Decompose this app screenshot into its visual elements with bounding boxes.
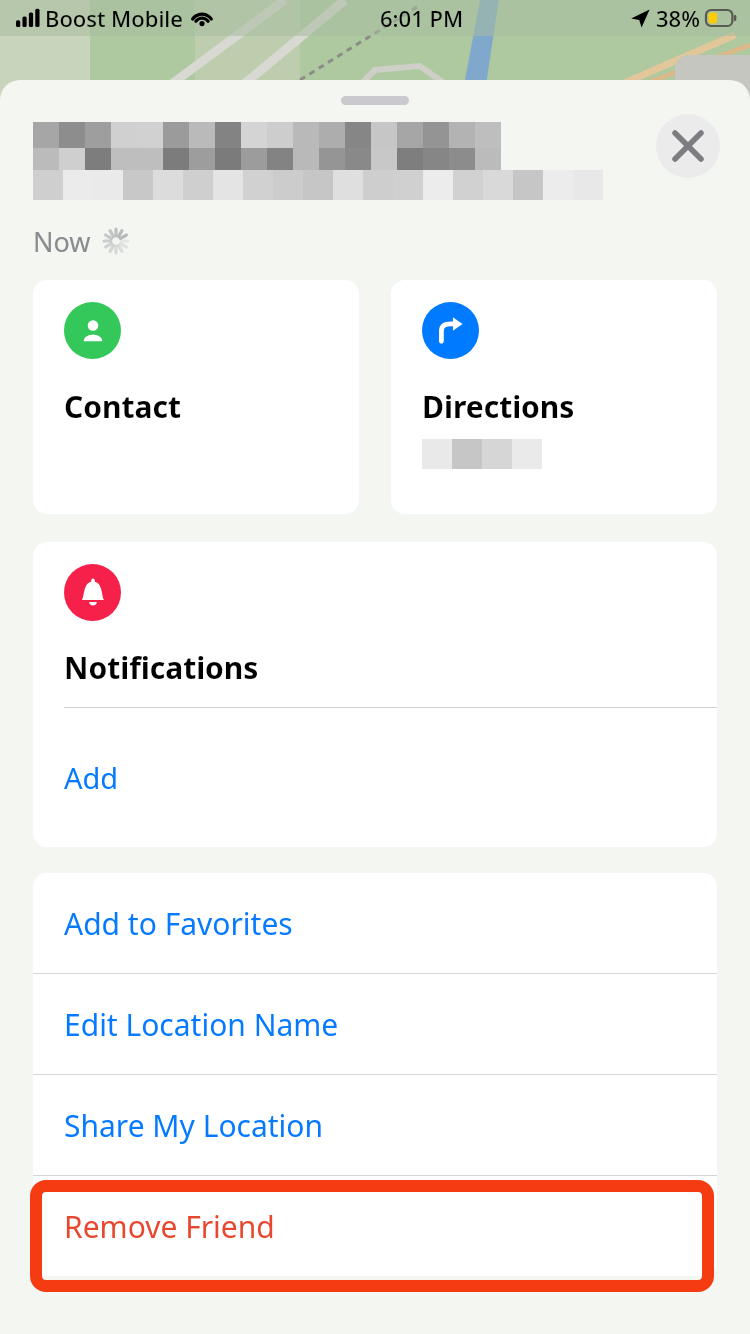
- staticText: Boost Mobile: [45, 3, 183, 33]
- staticText: 38%: [656, 3, 700, 33]
- staticText: Add: [64, 758, 119, 797]
- button[interactable]: Contact: [33, 280, 359, 514]
- button[interactable]: Add to Favorites: [33, 873, 717, 973]
- staticText: Add to Favorites: [64, 903, 293, 944]
- staticText: 6:01 PM: [380, 3, 464, 33]
- button[interactable]: Add: [33, 708, 717, 847]
- staticText: Notifications: [64, 647, 259, 688]
- staticText: Contact: [64, 386, 181, 427]
- button[interactable]: Remove Friend: [33, 1176, 717, 1276]
- button[interactable]: Edit Location Name: [33, 974, 717, 1074]
- staticText: Remove Friend: [64, 1206, 275, 1247]
- staticText: Edit Location Name: [64, 1004, 339, 1045]
- staticText: Now: [33, 223, 91, 260]
- button[interactable]: Share My Location: [33, 1075, 717, 1175]
- staticText: Share My Location: [64, 1105, 324, 1146]
- button[interactable]: Close: [656, 114, 720, 178]
- button[interactable]: Directions: [391, 280, 717, 514]
- staticText: Directions: [422, 386, 575, 427]
- button[interactable]: Notifications: [33, 542, 717, 707]
